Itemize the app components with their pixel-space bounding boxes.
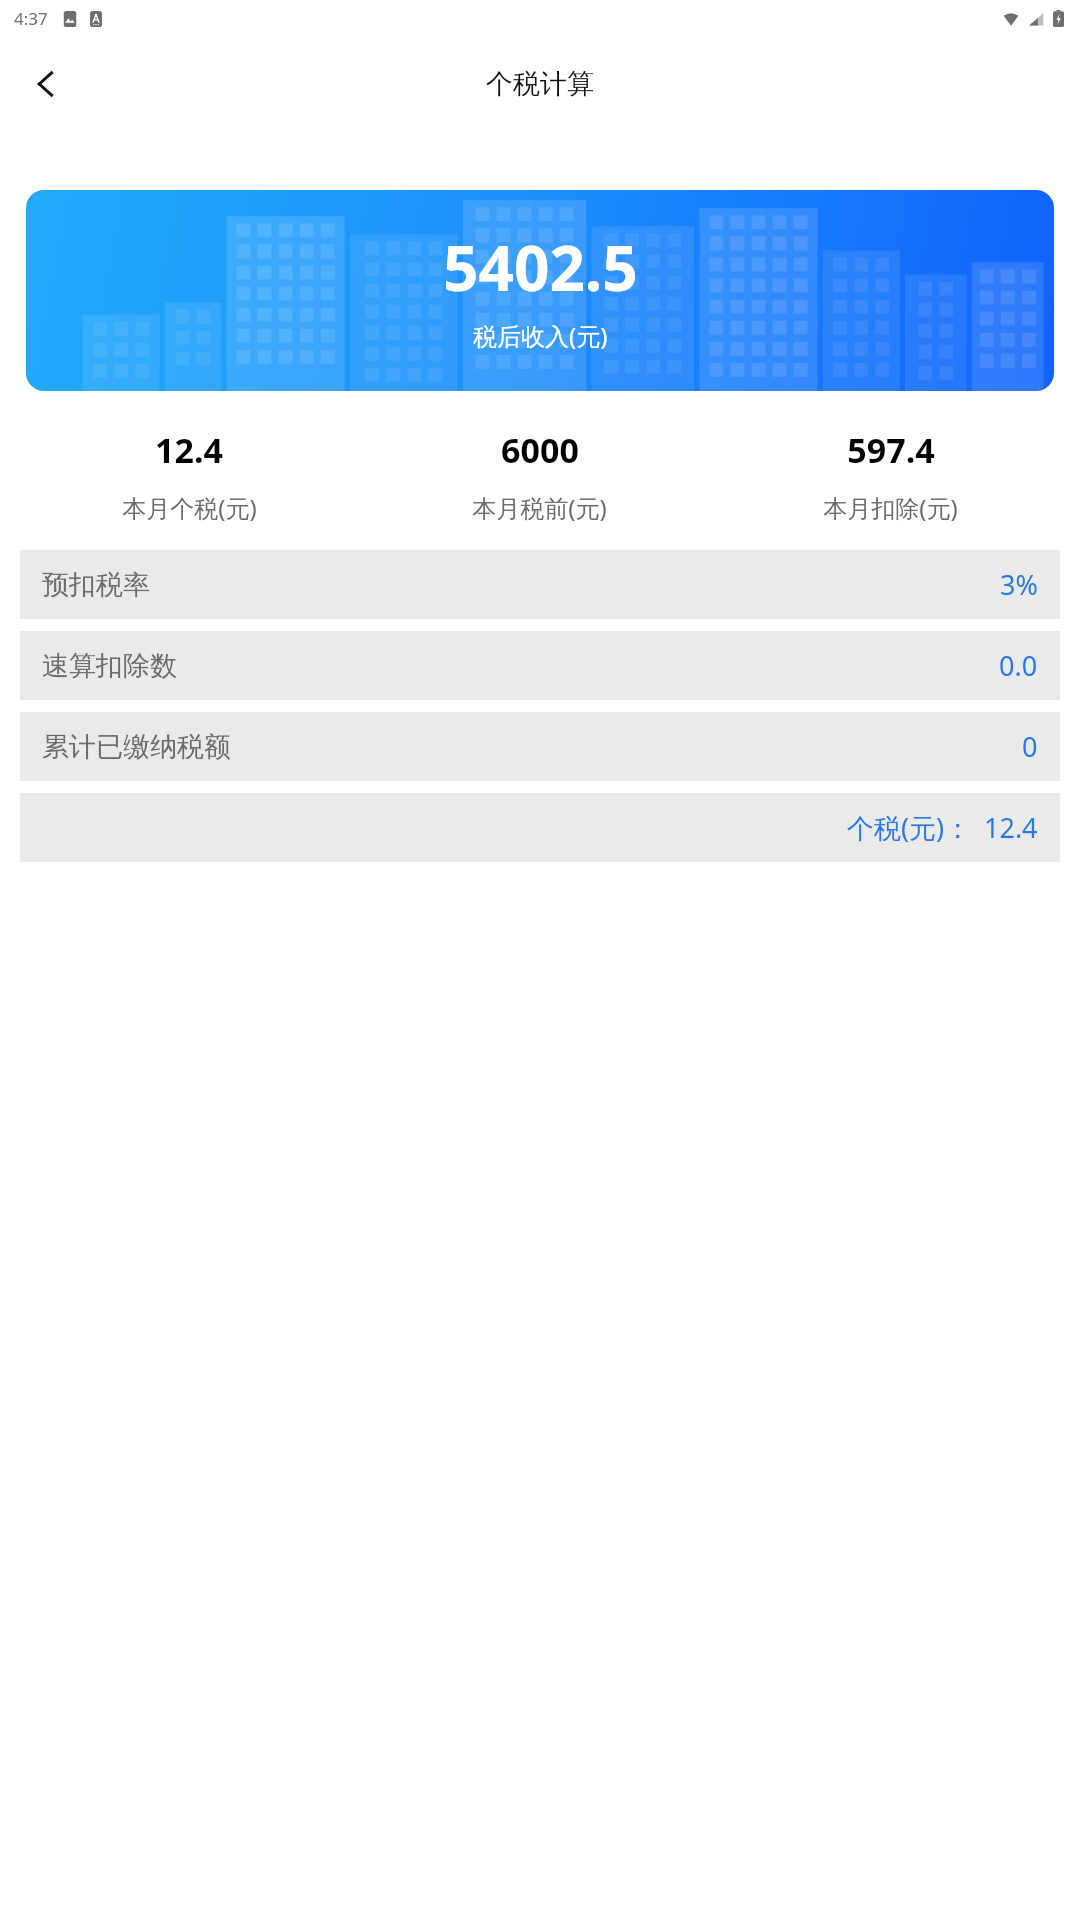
staticText: 累计已缴纳税额 <box>42 730 231 764</box>
button[interactable]: 5402.5 <box>26 190 1054 391</box>
staticText: 5402.5 <box>443 225 638 309</box>
staticText: 0.0 <box>999 647 1038 684</box>
staticText: 12.4 <box>984 809 1038 846</box>
staticText: 本月个税(元) <box>122 491 257 524</box>
staticText: 预扣税率 <box>42 568 150 602</box>
staticText: 12.4 <box>155 427 223 473</box>
button[interactable]: 速算扣除数 <box>20 631 1060 700</box>
staticText: 税后收入(元) <box>473 319 608 352</box>
staticText: 4:37 <box>14 7 48 30</box>
staticText: 本月税前(元) <box>472 491 607 524</box>
staticText: 6000 <box>501 427 579 473</box>
button[interactable]: 个税(元)： <box>20 793 1060 862</box>
staticText: 597.4 <box>847 427 935 473</box>
button[interactable]: Back <box>18 56 74 112</box>
staticText: 速算扣除数 <box>42 649 177 683</box>
button[interactable]: 597.4 <box>715 427 1066 524</box>
staticText: 本月扣除(元) <box>823 491 958 524</box>
staticText: 3% <box>1000 566 1038 603</box>
staticText: 个税计算 <box>486 67 594 101</box>
button[interactable]: 12.4 <box>14 427 364 524</box>
staticText: 个税(元)： <box>847 809 972 846</box>
button[interactable]: 累计已缴纳税额 <box>20 712 1060 781</box>
button[interactable]: 预扣税率 <box>20 550 1060 619</box>
button[interactable]: 6000 <box>364 427 715 524</box>
staticText: 0 <box>1022 728 1038 765</box>
